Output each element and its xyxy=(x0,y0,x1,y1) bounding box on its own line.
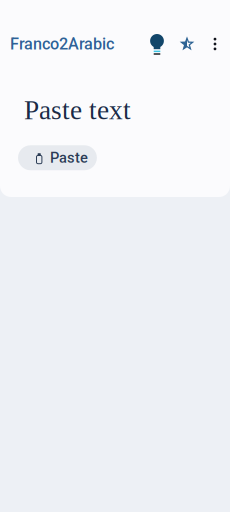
button[interactable]: Tips xyxy=(142,24,172,64)
button[interactable]: Rate app xyxy=(172,24,202,64)
staticText: Paste text xyxy=(24,95,131,125)
staticText: Paste xyxy=(50,149,88,166)
staticText: Franco2Arabic xyxy=(10,34,114,54)
button[interactable]: Paste xyxy=(18,145,97,170)
button[interactable]: More options xyxy=(202,24,228,64)
